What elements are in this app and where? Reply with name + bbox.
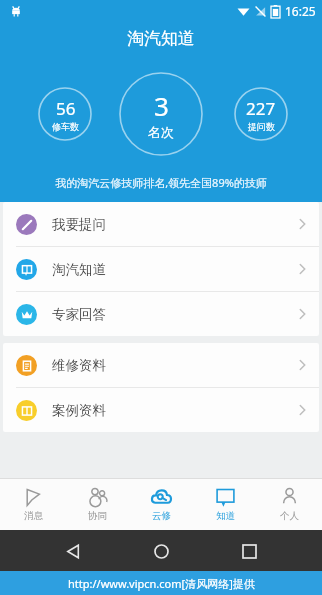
- staticText: 云修: [152, 510, 171, 522]
- button[interactable]: 案例资料: [3, 388, 319, 432]
- staticText: 16:25: [285, 3, 316, 19]
- button[interactable]: 淘汽知道: [3, 247, 319, 291]
- button[interactable]: 专家回答: [3, 292, 319, 336]
- staticText: 提问数: [248, 121, 275, 132]
- button[interactable]: 我要提问: [3, 202, 319, 246]
- staticText: 淘汽知道: [52, 261, 106, 278]
- staticText: 3: [154, 88, 169, 123]
- staticText: 维修资料: [52, 357, 106, 374]
- button[interactable]: 协同: [66, 478, 128, 530]
- button[interactable]: 消息: [2, 478, 64, 530]
- staticText: 专家回答: [52, 306, 106, 323]
- staticText: 227: [246, 97, 276, 120]
- staticText: 个人: [280, 510, 299, 522]
- button[interactable]: Back: [58, 536, 88, 566]
- staticText: 修车数: [52, 121, 79, 132]
- staticText: 名次: [148, 124, 174, 140]
- button[interactable]: 维修资料: [3, 343, 319, 387]
- staticText: 淘汽知道: [0, 28, 322, 49]
- button[interactable]: Home: [146, 536, 176, 566]
- staticText: 消息: [24, 510, 43, 522]
- button[interactable]: 知道: [194, 478, 256, 530]
- button[interactable]: Recent apps: [234, 536, 264, 566]
- button[interactable]: 个人: [258, 478, 320, 530]
- staticText: 知道: [216, 510, 235, 522]
- staticText: 56: [56, 97, 76, 120]
- staticText: 协同: [88, 510, 107, 522]
- staticText: 案例资料: [52, 402, 106, 419]
- staticText: 我要提问: [52, 216, 106, 233]
- staticText: http://www.vipcn.com[清风网络]提供: [68, 576, 255, 591]
- staticText: 我的淘汽云修技师排名,领先全国89%的技师: [0, 175, 322, 190]
- button[interactable]: 云修: [130, 478, 192, 530]
